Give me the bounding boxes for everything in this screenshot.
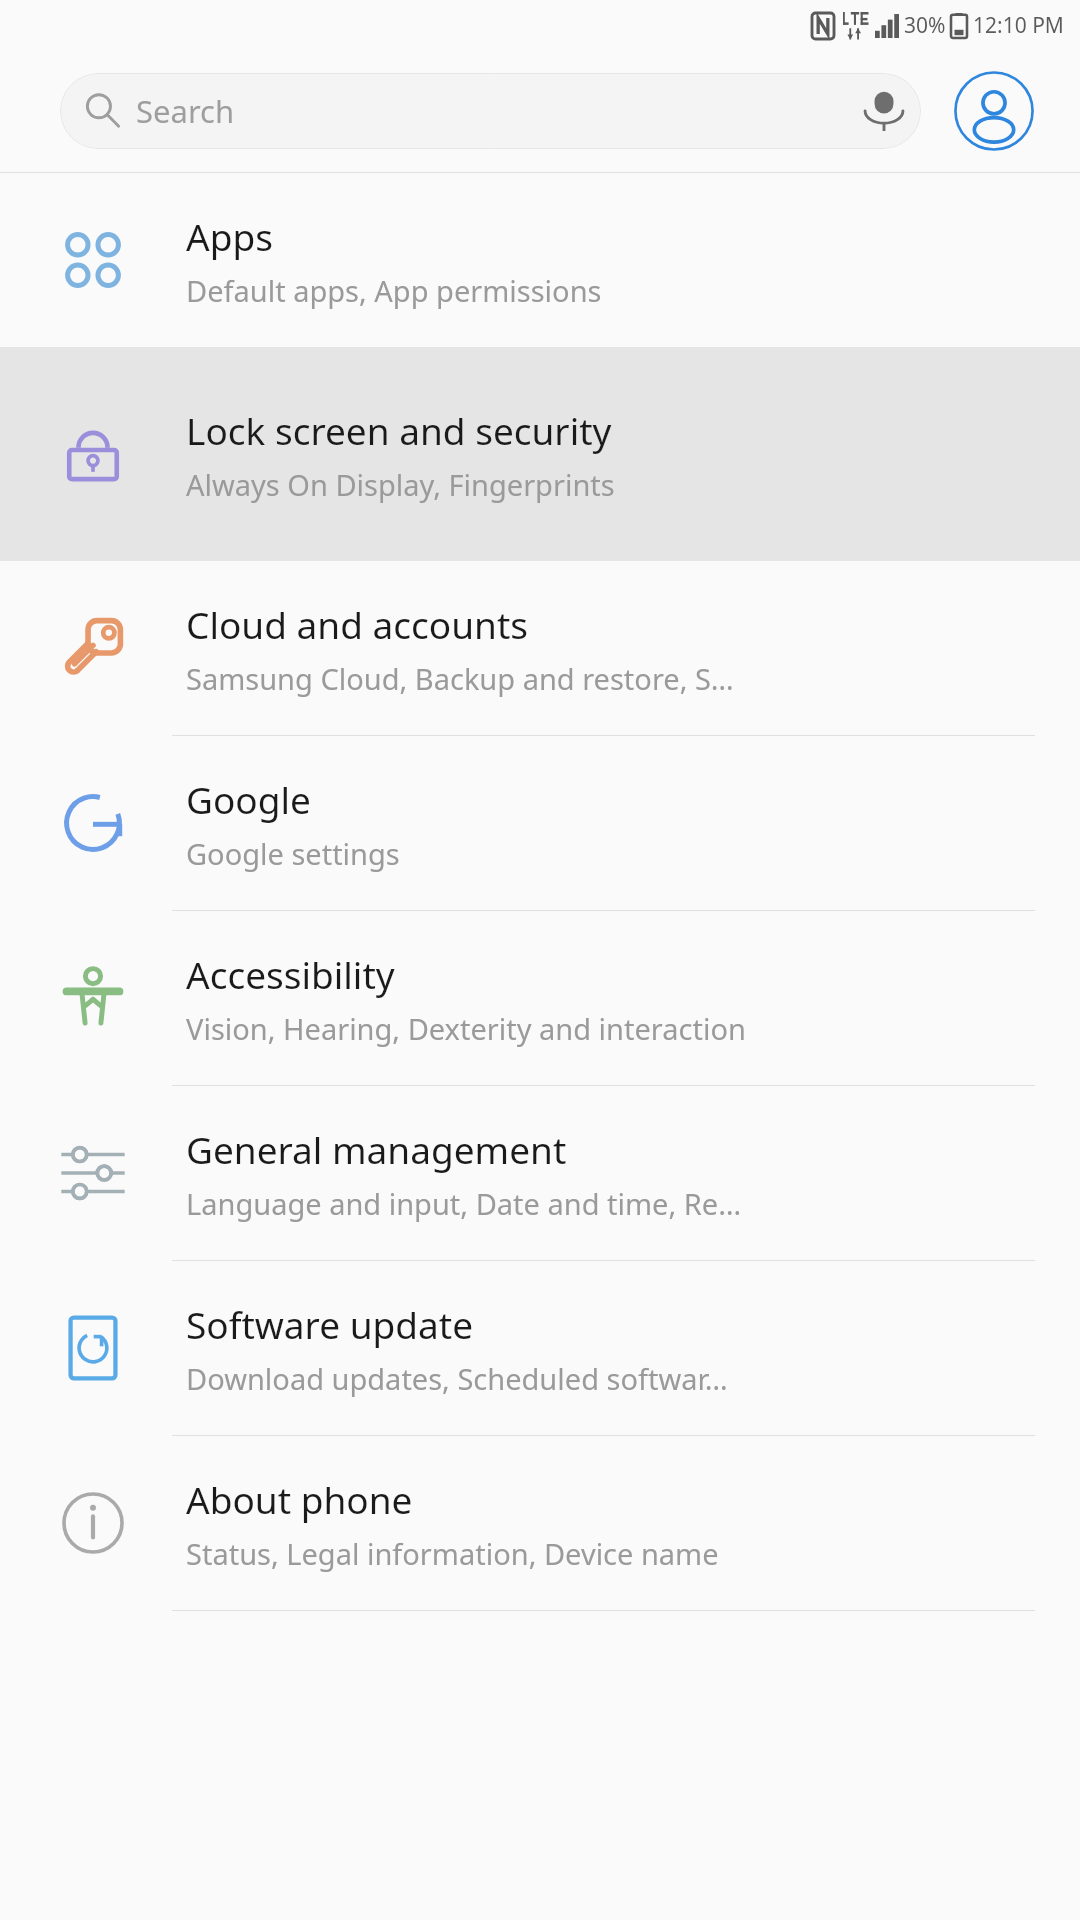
button[interactable]: Software update [0, 1261, 1080, 1435]
staticText: 30% [904, 11, 946, 40]
staticText: Vision, Hearing, Dexterity and interacti… [186, 1009, 746, 1048]
button[interactable]: Search [60, 73, 921, 149]
staticText: Always On Display, Fingerprints [186, 465, 615, 504]
staticText: Software update [186, 1299, 474, 1349]
staticText: Accessibility [186, 949, 395, 999]
staticText: Google settings [186, 834, 400, 873]
button[interactable]: General management [0, 1086, 1080, 1260]
button[interactable]: Accessibility [0, 911, 1080, 1085]
staticText: About phone [186, 1474, 413, 1524]
button[interactable]: Account [953, 70, 1035, 152]
staticText: Cloud and accounts [186, 599, 529, 649]
staticText: Status, Legal information, Device name [186, 1534, 719, 1573]
button[interactable]: Google [0, 736, 1080, 910]
staticText: Google [186, 774, 311, 824]
button[interactable]: Apps [0, 173, 1080, 347]
button[interactable]: Cloud and accounts [0, 561, 1080, 735]
staticText: Language and input, Date and time, Re… [186, 1184, 742, 1223]
staticText: Lock screen and security [186, 405, 612, 455]
button[interactable]: Lock screen and security [0, 347, 1080, 561]
staticText: 12:10 PM [973, 11, 1064, 40]
staticText: Default apps, App permissions [186, 271, 602, 310]
button[interactable]: About phone [0, 1436, 1080, 1610]
staticText: Search [136, 90, 235, 132]
staticText: Samsung Cloud, Backup and restore, S… [186, 659, 734, 698]
staticText: Download updates, Scheduled softwar… [186, 1359, 728, 1398]
staticText: Apps [186, 211, 273, 261]
staticText: General management [186, 1124, 567, 1174]
